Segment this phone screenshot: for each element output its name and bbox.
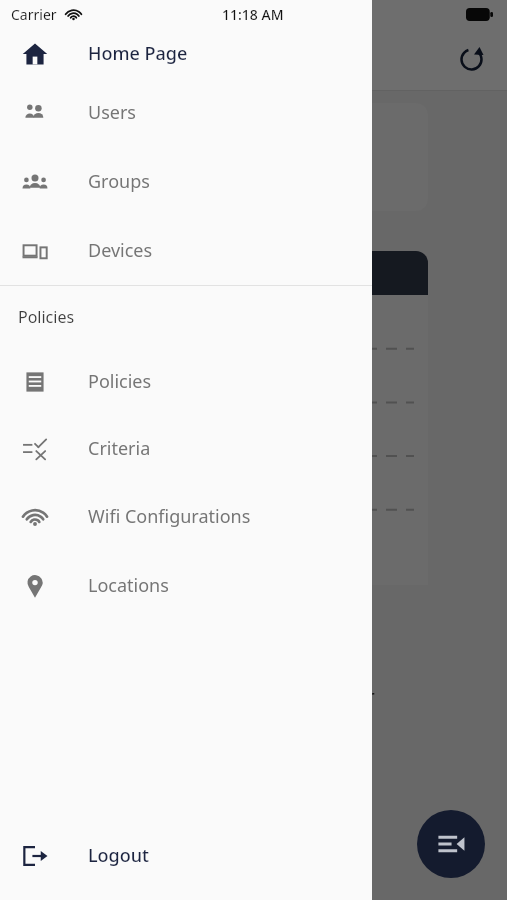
button[interactable]: Locations xyxy=(0,551,372,619)
staticText: Policies xyxy=(88,369,152,394)
button[interactable]: Open menu xyxy=(417,810,485,878)
button[interactable]: Groups xyxy=(0,147,372,215)
staticText: Criteria xyxy=(88,436,151,461)
button[interactable]: Home Page xyxy=(0,28,372,78)
staticText: Logout xyxy=(88,843,149,868)
button[interactable]: Criteria xyxy=(0,414,372,482)
button[interactable]: Users xyxy=(0,78,372,147)
staticText: Carrier xyxy=(11,5,57,24)
staticText: 11:18 AM xyxy=(222,5,284,24)
staticText: Users xyxy=(88,100,136,125)
staticText: Devices xyxy=(88,238,153,263)
button[interactable]: Devices xyxy=(0,215,372,285)
staticText: Policies xyxy=(18,306,75,328)
staticText: Groups xyxy=(88,169,150,194)
button[interactable]: QR xyxy=(290,727,440,789)
staticText: Work Pr xyxy=(300,683,375,710)
staticText: Home Page xyxy=(88,41,188,66)
button[interactable]: Wifi Configurations xyxy=(0,482,372,551)
button[interactable]: Policies xyxy=(0,348,372,414)
button[interactable]: Refresh xyxy=(451,39,491,79)
staticText: Wifi Configurations xyxy=(88,504,251,529)
staticText: Locations xyxy=(88,573,169,598)
button[interactable]: Logout xyxy=(0,822,372,888)
